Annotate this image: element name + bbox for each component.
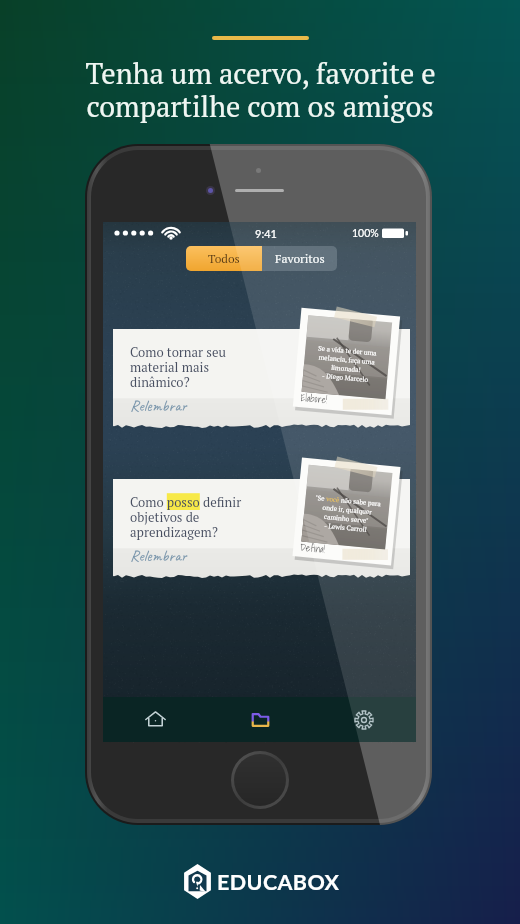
staticText: "Se você não sabe para onde ir, qualquer… <box>312 493 381 535</box>
staticText: Tenha um acervo, favorite e <box>85 54 436 92</box>
staticText: Relembrar <box>130 546 187 566</box>
staticText: Defina! <box>300 539 326 557</box>
button[interactable]: Home <box>103 697 208 742</box>
staticText: Relembrar <box>130 396 187 416</box>
button[interactable]: Favoritos <box>262 246 337 271</box>
button[interactable]: "Se você não sabe para onde ir, qualquer… <box>292 457 400 565</box>
staticText: Se a vida te der uma melancia, faça uma … <box>315 343 377 384</box>
staticText: 100% <box>352 227 379 240</box>
staticText: compartilhe com os amigos <box>86 87 434 125</box>
staticText: Todos <box>208 251 240 267</box>
button[interactable]: Se a vida te der uma melancia, faça uma … <box>293 308 400 415</box>
button[interactable]: Como tornar seu material mais dinâmico? <box>113 329 410 428</box>
button[interactable]: Como posso definir objetivos de aprendiz… <box>113 479 410 578</box>
staticText: EDUCABOX <box>217 869 340 895</box>
staticText: Favoritos <box>275 251 325 267</box>
staticText: Como posso definir objetivos de aprendiz… <box>130 493 242 541</box>
staticText: 9:41 <box>255 227 277 240</box>
staticText: Elabore! <box>300 389 328 407</box>
button[interactable]: Folders <box>208 697 312 742</box>
button[interactable]: Todos <box>186 246 262 271</box>
button[interactable]: Settings <box>312 697 416 742</box>
staticText: Como tornar seu material mais dinâmico? <box>130 343 226 391</box>
